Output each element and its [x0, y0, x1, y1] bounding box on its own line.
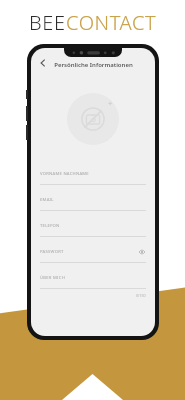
staticText: BEE — [29, 9, 66, 36]
staticText: CONTACT — [66, 9, 157, 36]
button[interactable]: Zurück — [35, 55, 51, 71]
staticText: EMAIL — [40, 197, 54, 203]
button[interactable]: VORNAME NACHNAME — [40, 164, 146, 190]
staticText: TELEFON — [40, 223, 60, 229]
staticText: ÜBER MICH — [40, 275, 66, 281]
button[interactable]: EMAIL — [40, 190, 146, 216]
button[interactable]: PASSWORT — [40, 242, 146, 268]
button[interactable]: Profilbild ändern — [67, 93, 119, 145]
staticText: VORNAME NACHNAME — [40, 171, 89, 177]
staticText: 0/150 — [136, 293, 146, 298]
staticText: PASSWORT — [40, 249, 64, 255]
button[interactable]: Passwort anzeigen — [138, 248, 146, 256]
staticText: Persönliche Informationen — [54, 61, 133, 69]
button[interactable]: TELEFON — [40, 216, 146, 242]
button[interactable]: ÜBER MICH — [40, 268, 146, 300]
